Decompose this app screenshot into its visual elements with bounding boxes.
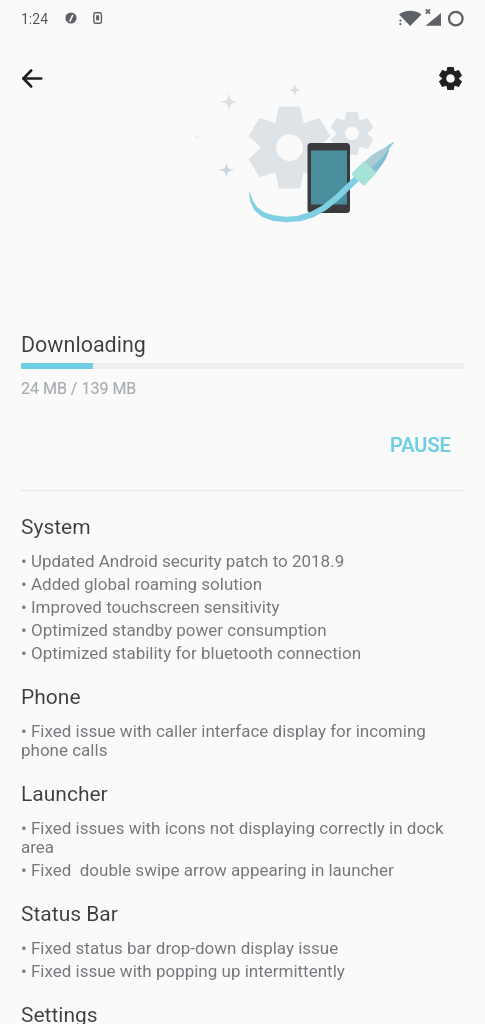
- staticText: • Improved touchscreen sensitivity: [21, 598, 459, 617]
- staticText: Status Bar: [21, 901, 118, 926]
- staticText: • Fixed double swipe arrow appearing in …: [21, 861, 459, 880]
- button[interactable]: PAUSE: [382, 427, 459, 462]
- staticText: 24 MB / 139 MB: [21, 379, 137, 398]
- staticText: • Updated Android security patch to 2018…: [21, 552, 459, 571]
- staticText: 1:24: [21, 11, 48, 27]
- staticText: • Fixed issue with popping up intermitte…: [21, 962, 459, 981]
- button[interactable]: Settings: [432, 60, 468, 96]
- staticText: System: [21, 514, 91, 539]
- staticText: • Optimized standby power consumption: [21, 621, 459, 640]
- staticText: • Fixed status bar drop-down display iss…: [21, 939, 459, 958]
- staticText: • Fixed issues with icons not displaying…: [21, 819, 459, 857]
- staticText: Launcher: [21, 781, 108, 806]
- staticText: • Fixed issue with caller interface disp…: [21, 722, 459, 760]
- button[interactable]: Back: [14, 60, 50, 96]
- staticText: • Added global roaming solution: [21, 575, 459, 594]
- staticText: Settings: [21, 1002, 98, 1024]
- staticText: Downloading: [21, 332, 146, 357]
- staticText: Phone: [21, 684, 81, 709]
- staticText: • Optimized stability for bluetooth conn…: [21, 644, 459, 663]
- staticText: PAUSE: [390, 433, 451, 456]
